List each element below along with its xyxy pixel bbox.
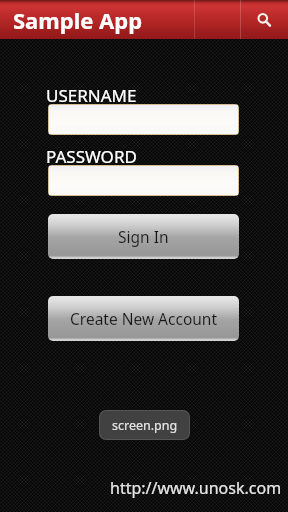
button[interactable]: Sign In bbox=[48, 214, 239, 259]
staticText: Create New Account bbox=[70, 308, 218, 329]
staticText: PASSWORD bbox=[46, 145, 137, 168]
button[interactable]: Create New Account bbox=[48, 296, 239, 341]
button[interactable]: screen.png bbox=[100, 411, 189, 439]
staticText: USERNAME bbox=[46, 84, 137, 107]
button[interactable] bbox=[49, 166, 238, 195]
staticText: screen.png bbox=[112, 417, 178, 434]
staticText: Sample App bbox=[13, 5, 143, 35]
button[interactable]: Search bbox=[241, 0, 288, 39]
staticText: http://www.unosk.com bbox=[110, 477, 282, 499]
button[interactable] bbox=[49, 105, 238, 134]
staticText: Sign In bbox=[118, 226, 169, 247]
